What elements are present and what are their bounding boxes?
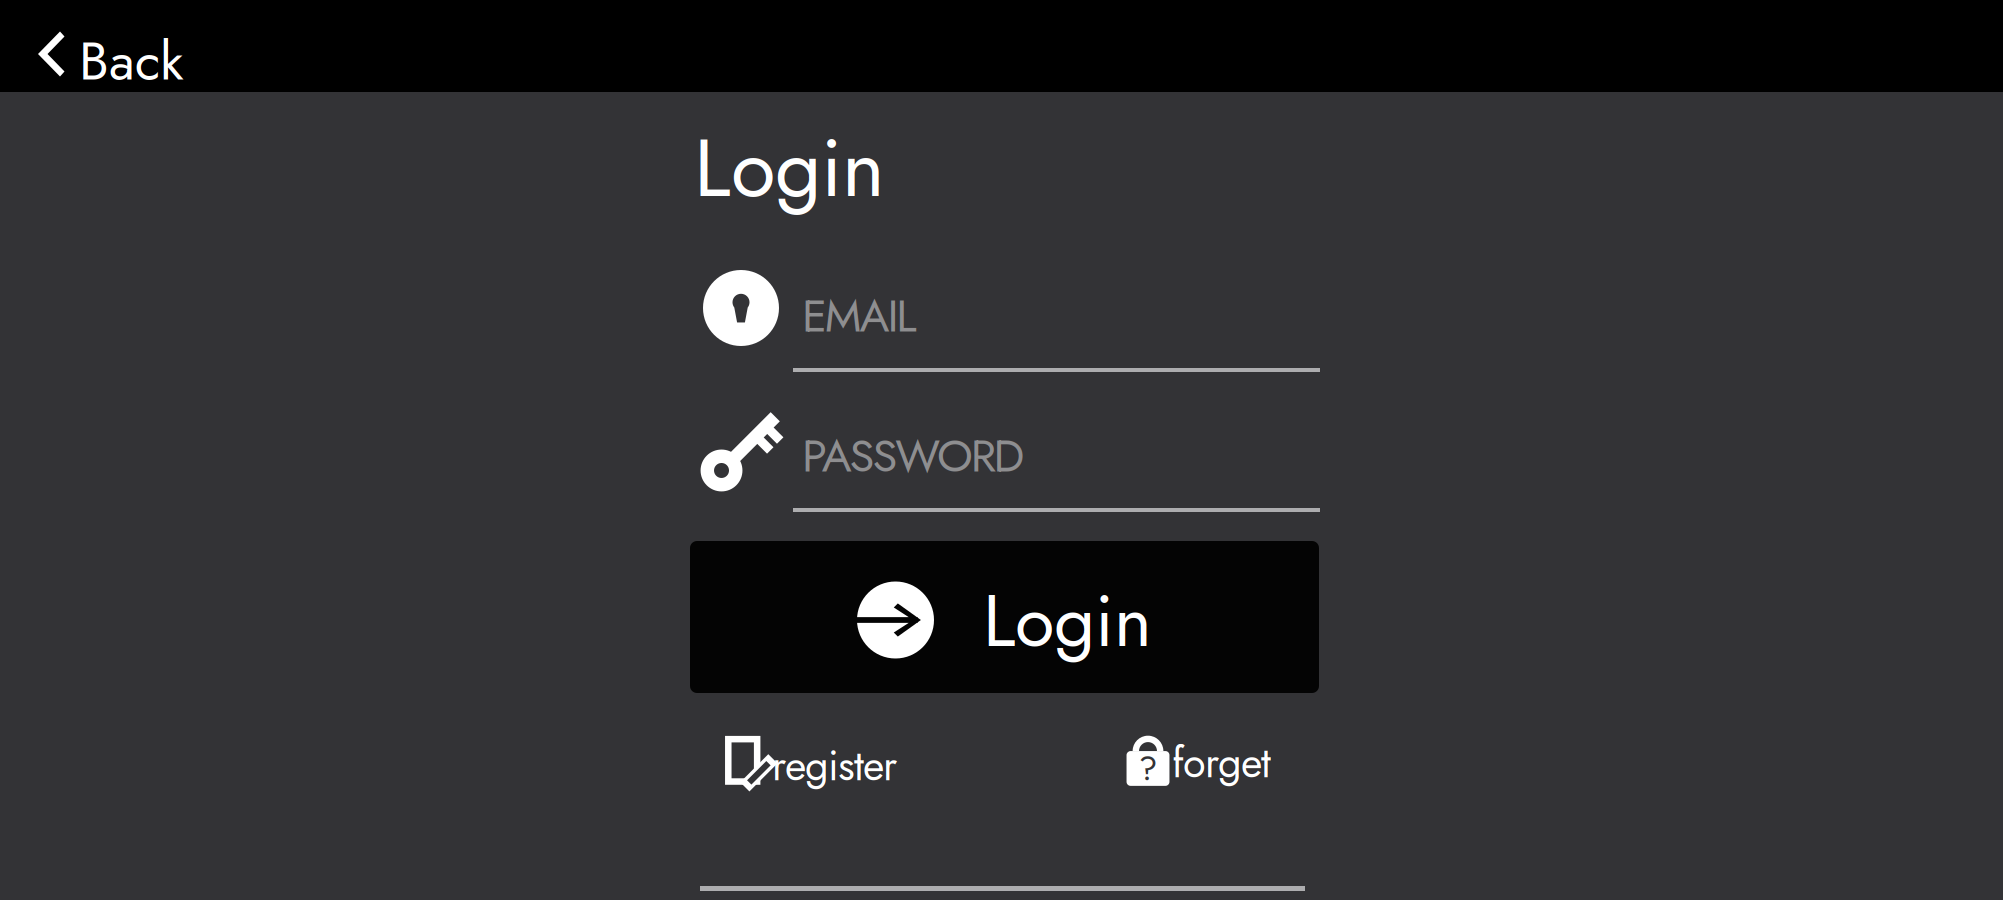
staticText: register: [772, 736, 897, 796]
button[interactable]: ?: [1119, 727, 1275, 787]
button[interactable]: register: [724, 731, 902, 791]
staticText: forget: [1172, 733, 1271, 793]
staticText: Login: [983, 569, 1152, 673]
button[interactable]: Back: [0, 0, 207, 92]
staticText: Login: [694, 109, 885, 226]
button[interactable]: Password: [793, 410, 1320, 512]
staticText: ?: [1138, 744, 1157, 793]
staticText: Back: [79, 22, 183, 100]
staticText: PASSWORD: [802, 423, 1025, 488]
button[interactable]: Login: [690, 541, 1319, 693]
button[interactable]: Email: [793, 270, 1320, 375]
staticText: EMAIL: [802, 283, 916, 348]
